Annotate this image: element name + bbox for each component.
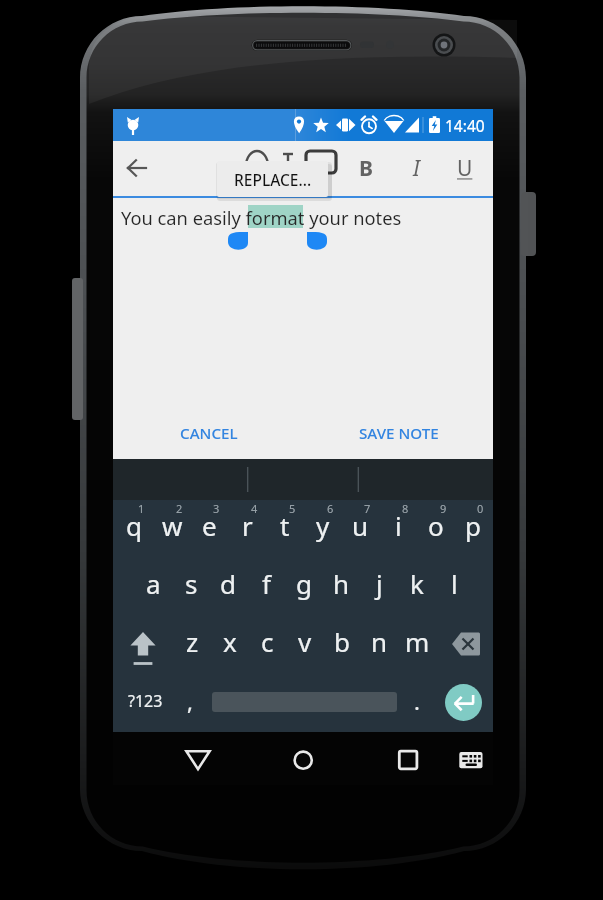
staticText: CANCEL — [180, 423, 238, 444]
staticText: i — [395, 508, 402, 543]
staticText: 4 — [251, 501, 258, 516]
staticText: n — [371, 624, 388, 659]
staticText: v — [298, 624, 312, 659]
button[interactable]: y — [304, 500, 342, 558]
staticText: REPLACE... — [234, 169, 312, 190]
staticText: e — [202, 508, 217, 543]
button[interactable]: p — [454, 500, 492, 558]
staticText: ?123 — [128, 690, 163, 712]
button[interactable]: v — [286, 616, 324, 674]
button[interactable]: t — [266, 500, 304, 558]
staticText: , — [187, 686, 193, 716]
staticText: y — [316, 508, 330, 543]
button[interactable]: , — [171, 682, 209, 724]
button[interactable]: Back — [178, 740, 218, 780]
button[interactable]: Home — [283, 740, 323, 780]
button[interactable]: Shift — [123, 624, 163, 664]
button[interactable]: j — [360, 558, 398, 616]
button[interactable]: SAVE NOTE — [345, 416, 453, 450]
staticText: x — [223, 624, 237, 659]
staticText: U — [457, 154, 473, 183]
staticText: 9 — [440, 501, 447, 516]
button[interactable]: a — [134, 558, 172, 616]
button[interactable]: x — [211, 616, 249, 674]
button[interactable]: Highlight — [303, 149, 347, 193]
button[interactable]: s — [172, 558, 210, 616]
button[interactable]: U — [443, 146, 487, 190]
button[interactable]: . — [398, 682, 436, 724]
staticText: m — [405, 624, 430, 659]
staticText: r — [242, 508, 253, 543]
button[interactable]: Keyboard — [453, 741, 485, 773]
button[interactable]: i — [379, 500, 417, 558]
staticText: 2 — [176, 501, 183, 516]
button[interactable]: g — [285, 558, 323, 616]
button[interactable]: ?123 — [115, 682, 176, 720]
staticText: p — [465, 508, 481, 543]
button[interactable]: m — [398, 616, 436, 674]
button[interactable]: w — [153, 500, 191, 558]
button[interactable]: B — [344, 146, 388, 190]
staticText: z — [186, 624, 199, 659]
staticText: 14:40 — [445, 115, 485, 136]
button[interactable]: Recents — [388, 740, 428, 780]
button[interactable]: q — [115, 500, 153, 558]
staticText: 6 — [327, 501, 334, 516]
staticText: c — [261, 624, 274, 659]
button[interactable]: k — [398, 558, 436, 616]
button[interactable]: o — [417, 500, 455, 558]
button[interactable]: z — [173, 616, 211, 674]
button[interactable]: n — [360, 616, 398, 674]
button[interactable]: Back — [117, 148, 157, 188]
button[interactable]: I — [394, 146, 438, 190]
button[interactable]: REPLACE... — [217, 161, 328, 197]
staticText: s — [185, 566, 198, 601]
staticText: f — [262, 566, 271, 601]
button[interactable]: Bulleted list — [237, 149, 277, 189]
staticText: You can easily format your notes — [121, 205, 402, 230]
staticText: 3 — [213, 501, 220, 516]
button[interactable]: Backspace — [452, 632, 480, 656]
staticText: o — [428, 508, 444, 543]
button[interactable]: Strikethrough — [269, 149, 309, 189]
button[interactable]: u — [341, 500, 379, 558]
staticText: . — [414, 686, 420, 716]
button[interactable]: c — [248, 616, 286, 674]
staticText: l — [451, 566, 458, 601]
staticText: 1 — [138, 501, 145, 516]
staticText: g — [296, 566, 312, 601]
button[interactable]: l — [435, 558, 473, 616]
staticText: u — [352, 508, 369, 543]
staticText: a — [146, 566, 161, 601]
staticText: B — [359, 154, 373, 183]
button[interactable]: CANCEL — [165, 416, 253, 450]
button[interactable]: b — [323, 616, 361, 674]
staticText: k — [410, 566, 424, 601]
staticText: 8 — [402, 501, 409, 516]
staticText: 0 — [477, 501, 484, 516]
staticText: w — [162, 508, 183, 543]
staticText: j — [376, 566, 383, 601]
staticText: I — [413, 154, 420, 183]
button[interactable]: e — [190, 500, 228, 558]
staticText: t — [280, 508, 290, 543]
staticText: b — [334, 624, 350, 659]
staticText: h — [333, 566, 350, 601]
button[interactable]: r — [228, 500, 266, 558]
button[interactable]: d — [209, 558, 247, 616]
staticText: d — [220, 566, 236, 601]
staticText: 5 — [289, 501, 296, 516]
staticText: 7 — [364, 501, 371, 516]
button[interactable]: Enter — [445, 684, 482, 721]
button[interactable]: h — [322, 558, 360, 616]
button[interactable]: f — [247, 558, 285, 616]
staticText: SAVE NOTE — [359, 423, 439, 444]
staticText: q — [126, 508, 142, 543]
